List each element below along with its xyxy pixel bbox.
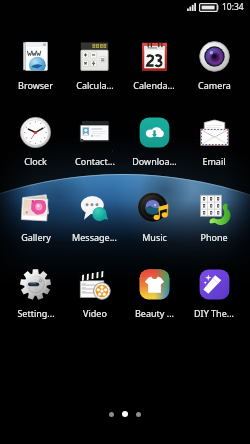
button[interactable]: Downloa... [124, 117, 184, 167]
button[interactable]: Calcula... [65, 41, 124, 91]
button[interactable]: Music [124, 193, 184, 243]
staticText: Video [83, 307, 107, 319]
staticText: Contact... [75, 155, 115, 167]
button[interactable]: DIY The... [184, 269, 244, 319]
button[interactable]: Browser [6, 41, 65, 91]
button[interactable]: Clock [6, 117, 65, 167]
button[interactable]: Contact... [65, 117, 124, 167]
staticText: Browser [18, 79, 53, 91]
staticText: Downloa... [132, 155, 177, 167]
staticText: Music [142, 231, 167, 243]
staticText: DIY The... [194, 307, 234, 319]
staticText: Camera [198, 79, 231, 91]
button[interactable]: Message... [65, 193, 124, 243]
button[interactable]: Phone [184, 193, 244, 243]
staticText: Email [202, 155, 226, 167]
button[interactable]: Calenda... [124, 41, 184, 91]
staticText: Message... [72, 231, 117, 243]
staticText: Calcula... [76, 79, 114, 91]
button[interactable]: Email [184, 117, 244, 167]
staticText: Beauty ... [135, 307, 174, 319]
staticText: Gallery [21, 231, 51, 243]
button[interactable]: Beauty ... [124, 269, 184, 319]
staticText: Phone [200, 231, 228, 243]
button[interactable]: Video [65, 269, 124, 319]
staticText: Setting... [17, 307, 55, 319]
staticText: Calenda... [133, 79, 175, 91]
button[interactable]: Gallery [6, 193, 65, 243]
button[interactable]: Setting... [6, 269, 65, 319]
button[interactable]: Camera [184, 41, 244, 91]
staticText: Clock [24, 155, 47, 167]
staticText: 10:34 [222, 1, 244, 13]
